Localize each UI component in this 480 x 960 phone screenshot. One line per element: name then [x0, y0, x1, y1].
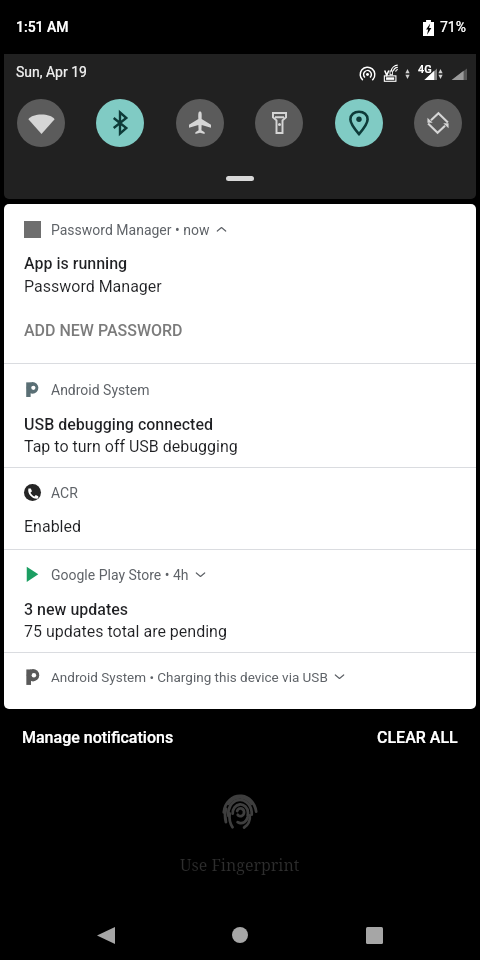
staticText: Sun, Apr 19: [16, 64, 87, 80]
staticText: 71%: [440, 19, 466, 35]
button[interactable]: ACR: [4, 468, 476, 549]
button[interactable]: Android System: [4, 364, 476, 467]
button[interactable]: Manage notifications: [22, 728, 174, 747]
staticText: 4G: [418, 63, 432, 76]
button[interactable]: CLEAR ALL: [377, 728, 458, 747]
staticText: USB debugging connected: [24, 415, 213, 434]
button[interactable]: Google Play Store • 4h: [4, 550, 476, 652]
button[interactable]: Back: [74, 910, 138, 960]
staticText: Use Fingerprint: [180, 854, 300, 876]
staticText: ACR: [51, 485, 78, 501]
button[interactable]: Collapse panel: [226, 176, 254, 181]
button[interactable]: Wi-Fi: [17, 99, 65, 147]
button[interactable]: Recent apps: [342, 910, 406, 960]
button[interactable]: Auto-rotate: [414, 99, 462, 147]
button[interactable]: Bluetooth: [96, 99, 144, 147]
staticText: 1:51 AM: [16, 19, 69, 35]
button[interactable]: Password Manager • now: [4, 204, 476, 363]
staticText: Tap to turn off USB debugging: [24, 437, 238, 456]
staticText: Enabled: [24, 517, 82, 536]
button[interactable]: Home: [208, 910, 272, 960]
button[interactable]: ADD NEW PASSWORD: [24, 321, 183, 340]
button[interactable]: Android System • Charging this device vi…: [4, 653, 476, 709]
staticText: App is running: [24, 254, 128, 273]
staticText: Android System: [51, 382, 150, 398]
staticText: Password Manager • now: [51, 222, 210, 238]
button[interactable]: Flashlight: [255, 99, 303, 147]
button[interactable]: Location: [335, 99, 383, 147]
button[interactable]: Airplane mode: [176, 99, 224, 147]
staticText: Google Play Store • 4h: [51, 567, 189, 583]
staticText: 75 updates total are pending: [24, 622, 227, 641]
staticText: Password Manager: [24, 277, 162, 296]
staticText: Android System • Charging this device vi…: [51, 669, 328, 685]
staticText: 3 new updates: [24, 600, 129, 619]
